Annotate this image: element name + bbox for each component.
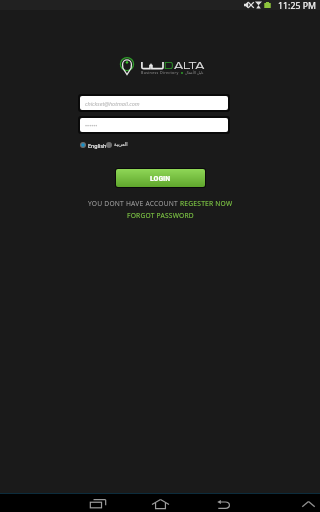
button[interactable]: chickset@hotmail.com — [80, 96, 228, 110]
button[interactable]: REGESTER NOW — [180, 199, 233, 208]
staticText: دليل الأعمال — [185, 70, 204, 75]
button[interactable]: Show navigation bar — [297, 493, 320, 512]
staticText: English — [88, 142, 107, 149]
staticText: D — [164, 59, 174, 71]
staticText: chickset@hotmail.com — [85, 100, 140, 107]
button[interactable]: English — [79, 139, 106, 151]
staticText: ALTA — [174, 59, 205, 71]
button[interactable]: Recent apps — [80, 493, 116, 512]
button[interactable]: •••••• — [80, 118, 228, 132]
staticText: LOGIN — [150, 174, 171, 183]
button[interactable]: LOGIN — [116, 169, 205, 187]
staticText: YOU DONT HAVE ACCOUNT — [88, 199, 180, 208]
staticText: 11:25 PM — [278, 0, 317, 10]
staticText: Business Directory — [141, 70, 179, 75]
staticText: FORGOT PASSWORD — [127, 211, 194, 220]
button[interactable]: Back — [204, 493, 240, 512]
button[interactable]: العربية — [106, 139, 128, 151]
button[interactable]: FORGOT PASSWORD — [127, 211, 194, 220]
staticText: •••••• — [85, 122, 98, 129]
staticText: REGESTER NOW — [180, 199, 233, 208]
staticText: العربية — [114, 141, 128, 147]
button[interactable]: Home — [142, 493, 178, 512]
